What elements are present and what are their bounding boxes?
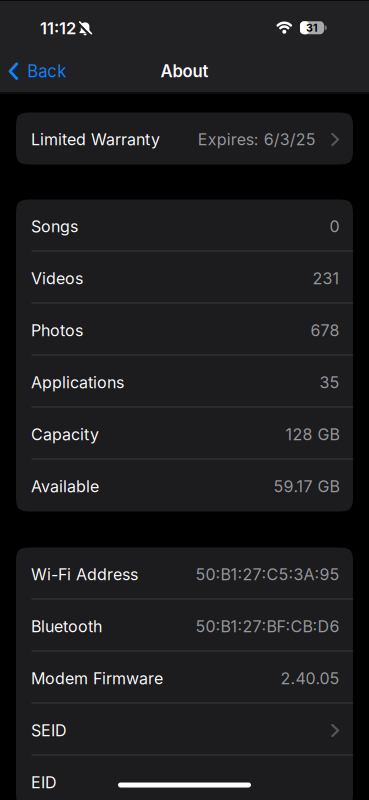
staticText: About	[160, 61, 208, 81]
staticText: 0	[329, 217, 339, 236]
staticText: Songs	[31, 217, 78, 236]
button[interactable]: Back	[0, 47, 66, 92]
staticText: 50:B1:27:BF:CB:D6	[195, 617, 339, 636]
staticText: 59.17 GB	[273, 477, 339, 496]
staticText: 231	[312, 269, 339, 288]
staticText: Capacity	[31, 425, 99, 444]
button[interactable]: Limited Warranty	[16, 112, 353, 164]
staticText: 678	[310, 321, 339, 340]
staticText: Applications	[31, 373, 124, 392]
staticText: 128 GB	[285, 425, 339, 444]
staticText: SEID	[31, 721, 67, 740]
staticText: Expires: 6/3/25	[198, 130, 316, 149]
staticText: Wi-Fi Address	[31, 565, 138, 584]
staticText: 2.40.05	[280, 669, 339, 688]
staticText: 31	[306, 21, 318, 34]
staticText: Limited Warranty	[31, 130, 160, 149]
staticText: 50:B1:27:C5:3A:95	[195, 565, 339, 584]
button[interactable]: SEID	[16, 703, 353, 755]
staticText: EID	[31, 773, 57, 792]
staticText: 11:12	[40, 18, 76, 38]
staticText: Back	[27, 61, 66, 81]
staticText: Bluetooth	[31, 617, 102, 636]
staticText: Available	[31, 477, 99, 496]
staticText: 35	[319, 373, 339, 392]
staticText: Photos	[31, 321, 83, 340]
staticText: Videos	[31, 269, 83, 288]
staticText: Modem Firmware	[31, 669, 163, 688]
